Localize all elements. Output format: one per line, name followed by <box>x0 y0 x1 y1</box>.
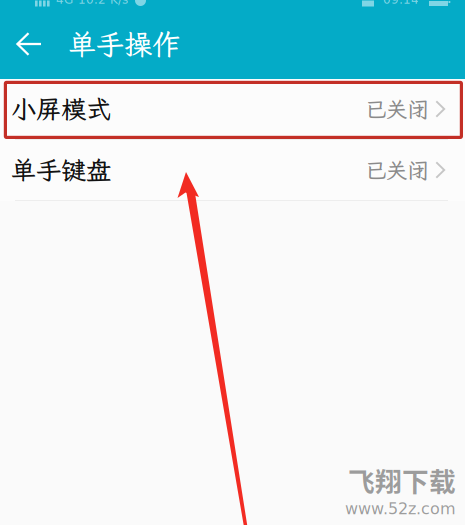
staticText: 飞翔下载 <box>348 461 456 499</box>
button[interactable]: 单手键盘 <box>0 140 465 200</box>
staticText: www.52z.com <box>345 499 456 518</box>
staticText: 小屏模式 <box>11 92 111 126</box>
staticText: 单手操作 <box>68 26 180 62</box>
staticText: 单手键盘 <box>11 153 111 187</box>
button[interactable]: 小屏模式 <box>0 79 465 139</box>
staticText: 09:14 <box>383 0 419 6</box>
button[interactable]: Back <box>0 19 68 69</box>
staticText: 10.2 K/s <box>78 0 128 6</box>
staticText: 4G <box>56 0 73 6</box>
staticText: 已关闭 <box>365 156 428 184</box>
staticText: 已关闭 <box>365 95 428 123</box>
